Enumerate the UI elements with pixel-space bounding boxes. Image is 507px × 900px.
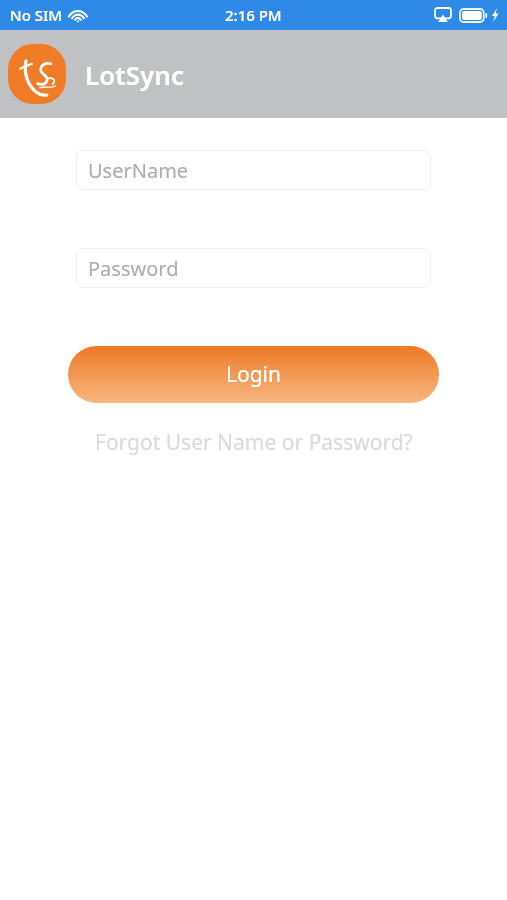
staticText: No SIM [10, 5, 63, 25]
staticText: UserName [88, 157, 189, 184]
other: Battery [460, 9, 487, 22]
staticText: Login [226, 360, 282, 389]
button[interactable]: UserName [76, 150, 431, 190]
staticText: Forgot User Name or Password? [95, 428, 413, 457]
staticText: 2:16 PM [225, 5, 282, 25]
other: AirPlay [435, 8, 451, 22]
staticText: Password [88, 255, 179, 282]
staticText: LotSync [85, 57, 184, 92]
other: LotSync logo [8, 44, 66, 104]
button[interactable]: Forgot User Name or Password? [0, 425, 507, 459]
button[interactable]: Login [68, 346, 439, 403]
button[interactable]: Password [76, 248, 431, 288]
